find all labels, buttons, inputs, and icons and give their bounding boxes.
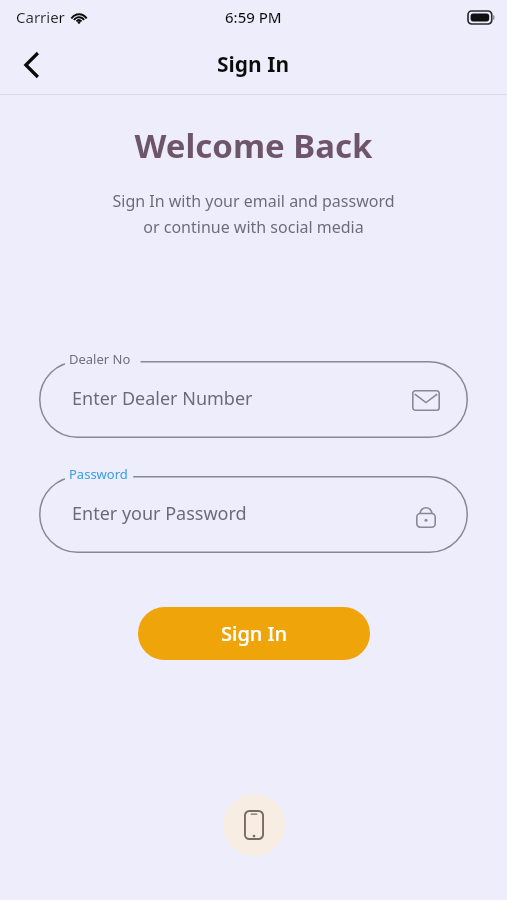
button[interactable]: Password bbox=[39, 465, 468, 553]
staticText: Sign In bbox=[217, 50, 290, 79]
staticText: Enter Dealer Number bbox=[72, 386, 253, 411]
button[interactable]: Back bbox=[8, 41, 56, 89]
staticText: Enter your Password bbox=[72, 501, 247, 526]
staticText: Carrier bbox=[16, 7, 65, 27]
button[interactable]: Sign In bbox=[138, 607, 370, 660]
staticText: Dealer No bbox=[69, 350, 131, 368]
staticText: Password bbox=[69, 465, 128, 483]
staticText: 6:59 PM bbox=[225, 7, 282, 27]
staticText: Welcome Back bbox=[134, 123, 373, 168]
staticText: Sign In with your email and password or … bbox=[0, 190, 507, 238]
button[interactable]: Dealer No bbox=[39, 350, 468, 438]
button[interactable]: Continue with phone bbox=[223, 794, 285, 856]
staticText: Sign In bbox=[221, 620, 288, 647]
